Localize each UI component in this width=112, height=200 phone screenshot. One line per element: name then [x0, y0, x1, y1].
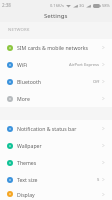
button[interactable]: Wallpaper [0, 137, 112, 154]
staticText: 58% [102, 3, 110, 8]
staticText: Bluetooth [17, 78, 42, 85]
staticText: SIM cards & mobile networks [17, 44, 89, 51]
staticText: Wallpaper [17, 142, 42, 149]
staticText: Display [17, 191, 35, 198]
button[interactable]: WiFi [0, 56, 112, 73]
button[interactable]: Display [0, 188, 112, 200]
staticText: 2:38 [2, 2, 11, 8]
staticText: Text size [17, 176, 38, 183]
button[interactable]: Bluetooth [0, 73, 112, 90]
staticText: Settings [44, 12, 68, 20]
staticText: WiFi [17, 61, 28, 68]
button[interactable]: Notification & status bar [0, 120, 112, 137]
button[interactable]: Themes [0, 154, 112, 171]
staticText: 0.16K/s [50, 3, 64, 8]
staticText: AirPort Express [69, 62, 100, 68]
staticText: Notification & status bar [17, 125, 77, 132]
button[interactable]: Text size [0, 171, 112, 188]
button[interactable]: More [0, 90, 112, 107]
staticText: NETWORK [8, 27, 30, 33]
staticText: 3G [79, 3, 85, 8]
staticText: More [17, 95, 30, 102]
staticText: Themes [17, 159, 37, 166]
staticText: Off [93, 79, 100, 85]
button[interactable]: SIM cards & mobile networks [0, 39, 112, 56]
staticText: S [97, 177, 100, 183]
